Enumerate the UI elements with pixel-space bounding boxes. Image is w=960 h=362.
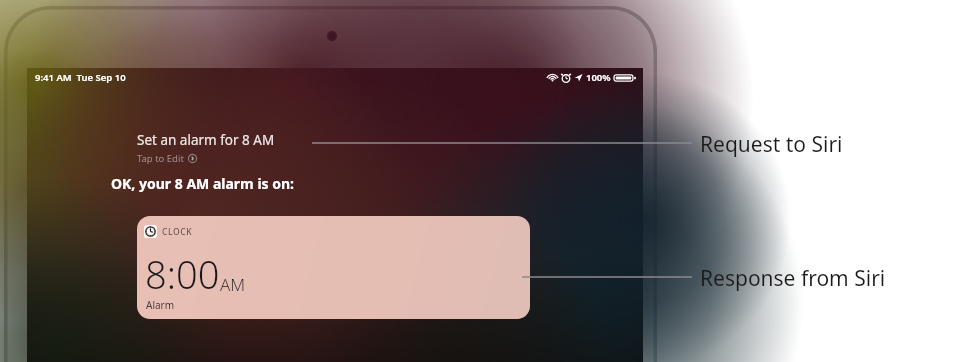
button[interactable]: CLOCK xyxy=(137,216,530,319)
staticText: Response from Siri xyxy=(700,264,886,293)
staticText: 100% xyxy=(586,71,611,84)
button[interactable]: Tap to Edit xyxy=(137,152,197,165)
staticText: AM xyxy=(220,273,246,296)
staticText: Tap to Edit xyxy=(137,152,184,165)
staticText: 9:41 AM Tue Sep 10 xyxy=(35,71,126,84)
staticText: OK, your 8 AM alarm is on: xyxy=(111,174,295,193)
staticText: Alarm xyxy=(146,298,175,312)
staticText: CLOCK xyxy=(162,226,193,238)
staticText: 8:00 xyxy=(145,248,220,300)
staticText: Set an alarm for 8 AM xyxy=(137,131,275,149)
staticText: Request to Siri xyxy=(700,130,843,159)
